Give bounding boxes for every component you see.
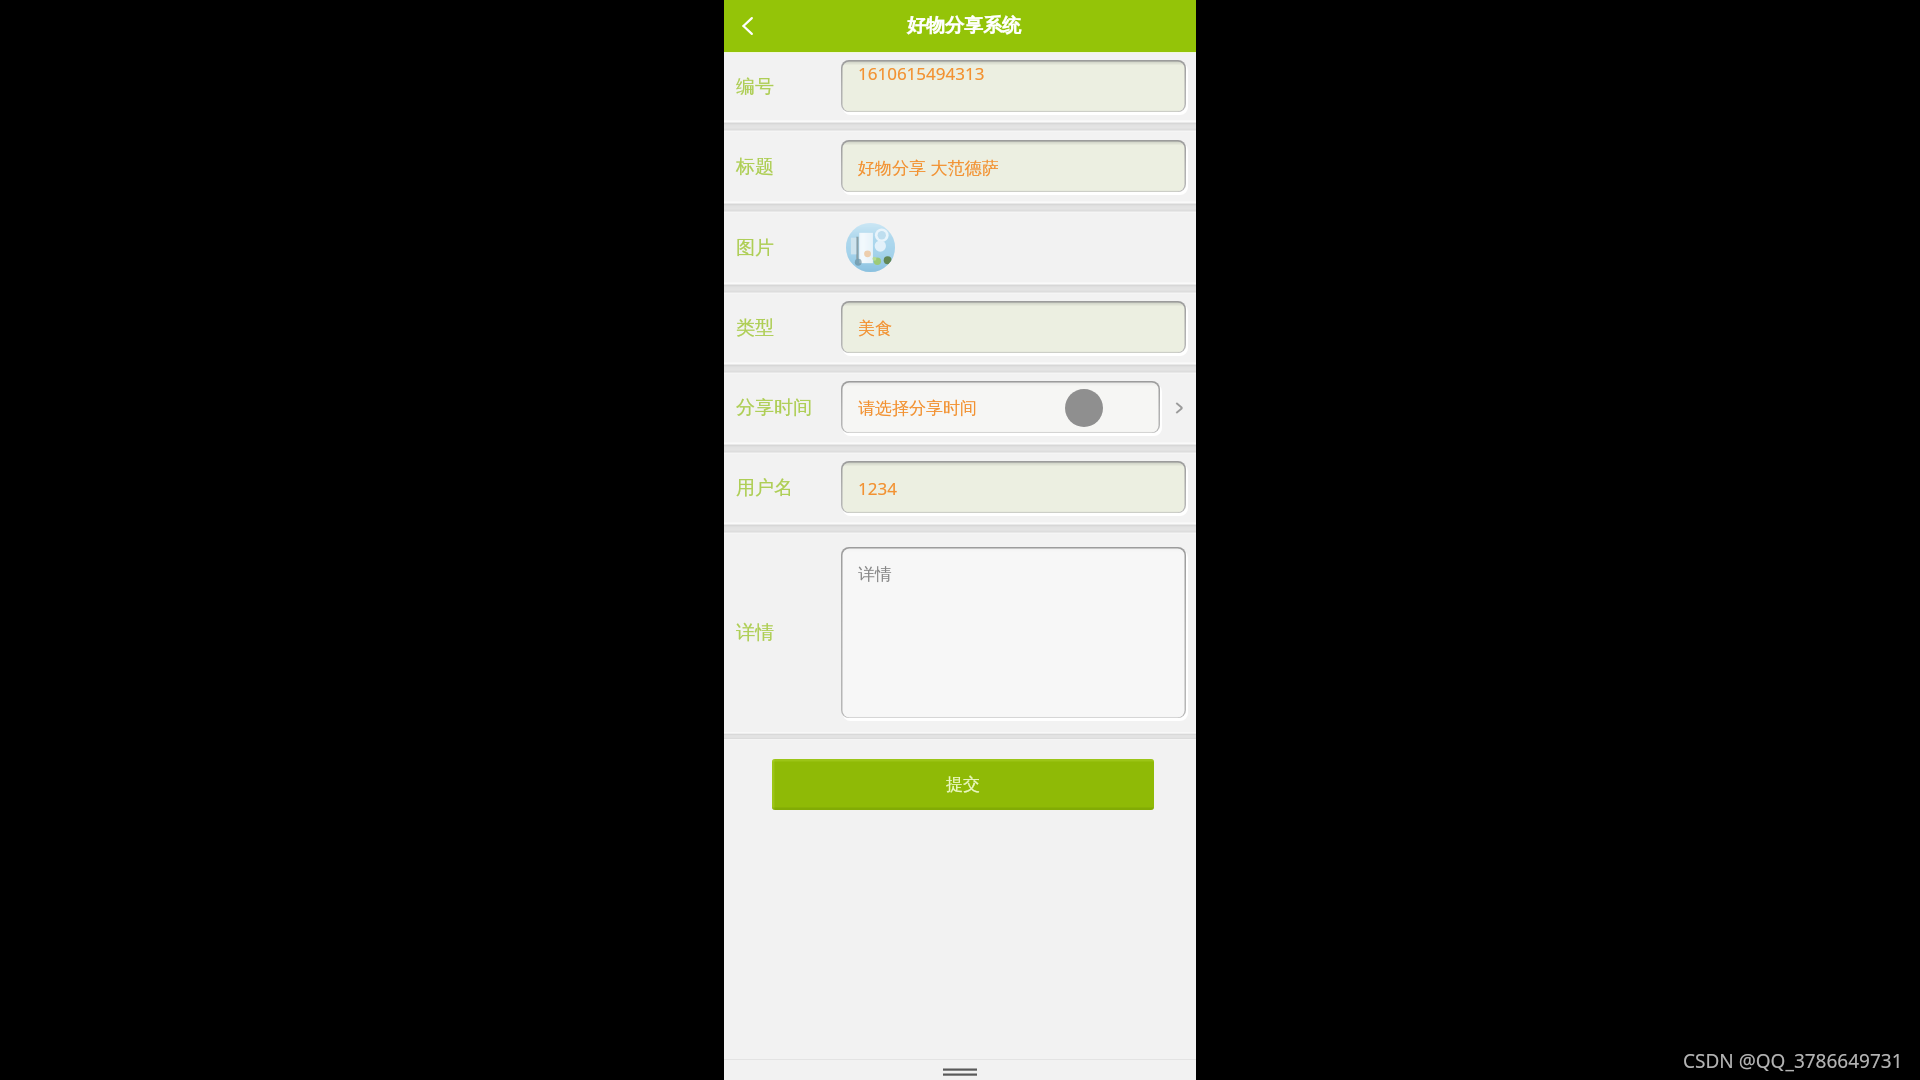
staticText: CSDN @QQ_3786649731 [1683,1048,1903,1074]
staticText: 用户名 [736,476,793,500]
button[interactable]: 详情 [841,547,1188,720]
staticText: 标题 [736,155,774,179]
staticText: 编号 [736,75,774,99]
staticText: 美食 [858,318,892,339]
staticText: 好物分享系统 [907,14,1021,38]
staticText: 图片 [736,236,774,260]
staticText: 请选择分享时间 [858,398,977,419]
staticText: 详情 [736,621,774,645]
button[interactable]: Picture [846,223,895,272]
button[interactable]: Choose time [1162,374,1196,442]
button[interactable]: Back [724,0,772,52]
staticText: 分享时间 [736,396,812,420]
staticText: 好物分享 大范德萨 [858,156,999,179]
staticText: 类型 [736,316,774,340]
staticText: 1610615494313 [858,62,985,85]
staticText: 1234 [858,477,897,500]
button[interactable]: 请选择分享时间 [841,381,1162,435]
staticText: 提交 [946,774,980,795]
button[interactable]: 提交 [772,759,1154,810]
staticText: 详情 [858,564,892,585]
